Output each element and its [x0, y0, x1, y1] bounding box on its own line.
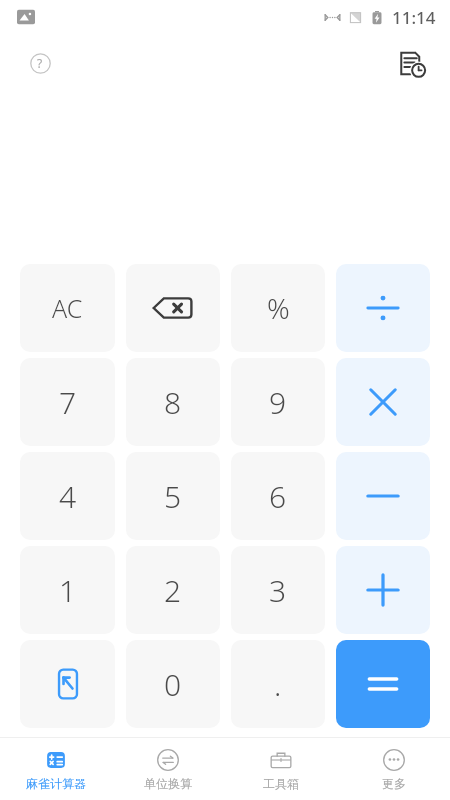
- staticText: 0: [164, 664, 182, 705]
- button[interactable]: 7: [20, 358, 115, 446]
- staticText: AC: [52, 291, 83, 325]
- button[interactable]: 0: [126, 640, 220, 728]
- button[interactable]: 麻雀计算器: [0, 738, 112, 800]
- button[interactable]: 6: [231, 452, 325, 540]
- button[interactable]: 工具箱: [224, 738, 337, 800]
- staticText: 11:14: [392, 6, 436, 29]
- button[interactable]: 9: [231, 358, 325, 446]
- button[interactable]: Plus: [336, 546, 430, 634]
- staticText: .: [274, 664, 282, 705]
- staticText: 3: [269, 570, 287, 611]
- staticText: 7: [59, 382, 77, 423]
- button[interactable]: Equals: [336, 640, 430, 728]
- button[interactable]: Backspace: [126, 264, 220, 352]
- button[interactable]: Expand: [20, 640, 115, 728]
- staticText: 麻雀计算器: [26, 776, 86, 791]
- staticText: 5: [164, 476, 182, 517]
- button[interactable]: Multiply: [336, 358, 430, 446]
- staticText: %: [267, 289, 290, 327]
- button[interactable]: 1: [20, 546, 115, 634]
- staticText: 9: [269, 382, 287, 423]
- staticText: 单位换算: [144, 776, 192, 791]
- button[interactable]: %: [231, 264, 325, 352]
- staticText: 6: [269, 476, 287, 517]
- staticText: ?: [37, 55, 43, 71]
- button[interactable]: Minus: [336, 452, 430, 540]
- staticText: 2: [164, 570, 182, 611]
- button[interactable]: 5: [126, 452, 220, 540]
- button[interactable]: 单位换算: [112, 738, 224, 800]
- staticText: 4: [59, 476, 77, 517]
- staticText: 更多: [382, 776, 406, 791]
- button[interactable]: 4: [20, 452, 115, 540]
- button[interactable]: Divide: [336, 264, 430, 352]
- button[interactable]: History: [389, 41, 433, 85]
- button[interactable]: 8: [126, 358, 220, 446]
- button[interactable]: .: [231, 640, 325, 728]
- button[interactable]: Help: [20, 43, 60, 83]
- button[interactable]: AC: [20, 264, 115, 352]
- button[interactable]: 3: [231, 546, 325, 634]
- staticText: 8: [164, 382, 182, 423]
- staticText: 1: [59, 570, 77, 611]
- staticText: 工具箱: [263, 776, 299, 791]
- button[interactable]: 2: [126, 546, 220, 634]
- button[interactable]: 更多: [337, 738, 450, 800]
